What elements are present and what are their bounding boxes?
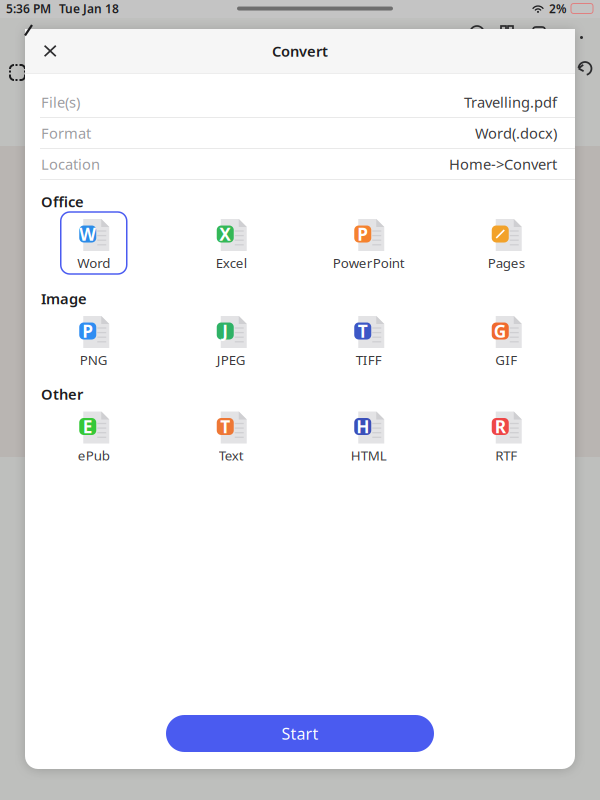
staticText: W — [79, 222, 96, 245]
staticText: Convert — [272, 41, 328, 61]
button[interactable]: Pages — [437, 212, 575, 274]
staticText: J — [222, 319, 228, 342]
button[interactable]: W — [25, 212, 162, 274]
staticText: Excel — [216, 254, 247, 272]
staticText: File(s) — [41, 92, 80, 112]
button[interactable]: P — [25, 309, 162, 371]
staticText: Office — [41, 192, 84, 211]
staticText: Other — [41, 384, 83, 404]
staticText: JPEG — [217, 351, 246, 369]
staticText: PNG — [80, 351, 108, 369]
button[interactable]: X — [162, 212, 300, 274]
staticText: Travelling.pdf — [464, 92, 557, 112]
button[interactable]: Close — [25, 29, 69, 73]
button[interactable]: E — [25, 404, 162, 466]
button[interactable]: R — [437, 404, 575, 466]
staticText: ePub — [78, 446, 110, 464]
staticText: HTML — [351, 446, 387, 464]
staticText: T — [358, 319, 368, 342]
staticText: P — [357, 222, 368, 245]
staticText: 5:36 PM — [6, 0, 51, 16]
staticText: G — [494, 319, 507, 342]
button[interactable]: H — [300, 404, 437, 466]
staticText: PowerPoint — [333, 254, 405, 272]
staticText: GIF — [495, 351, 517, 369]
staticText: Pages — [488, 254, 525, 272]
staticText: T — [220, 415, 230, 438]
button[interactable]: P — [300, 212, 437, 274]
button[interactable]: J — [162, 309, 300, 371]
staticText: 2% — [549, 0, 567, 16]
staticText: RTF — [495, 446, 517, 464]
staticText: Text — [219, 446, 244, 464]
staticText: P — [82, 319, 93, 342]
button[interactable]: T — [300, 309, 437, 371]
staticText: X — [219, 222, 231, 245]
staticText: Home->Convert — [449, 154, 557, 174]
staticText: Location — [41, 154, 100, 174]
staticText: Image — [41, 289, 87, 308]
staticText: Word — [77, 254, 110, 272]
staticText: Word(.docx) — [475, 123, 557, 143]
staticText: H — [356, 415, 369, 438]
staticText: Tue Jan 18 — [59, 0, 119, 16]
button[interactable]: G — [437, 309, 575, 371]
staticText: Format — [41, 123, 91, 143]
staticText: TIFF — [356, 351, 382, 369]
staticText: R — [495, 415, 506, 438]
button[interactable]: Start — [166, 715, 434, 752]
button[interactable]: T — [162, 404, 300, 466]
staticText: Start — [281, 723, 318, 744]
staticText: E — [83, 415, 93, 438]
